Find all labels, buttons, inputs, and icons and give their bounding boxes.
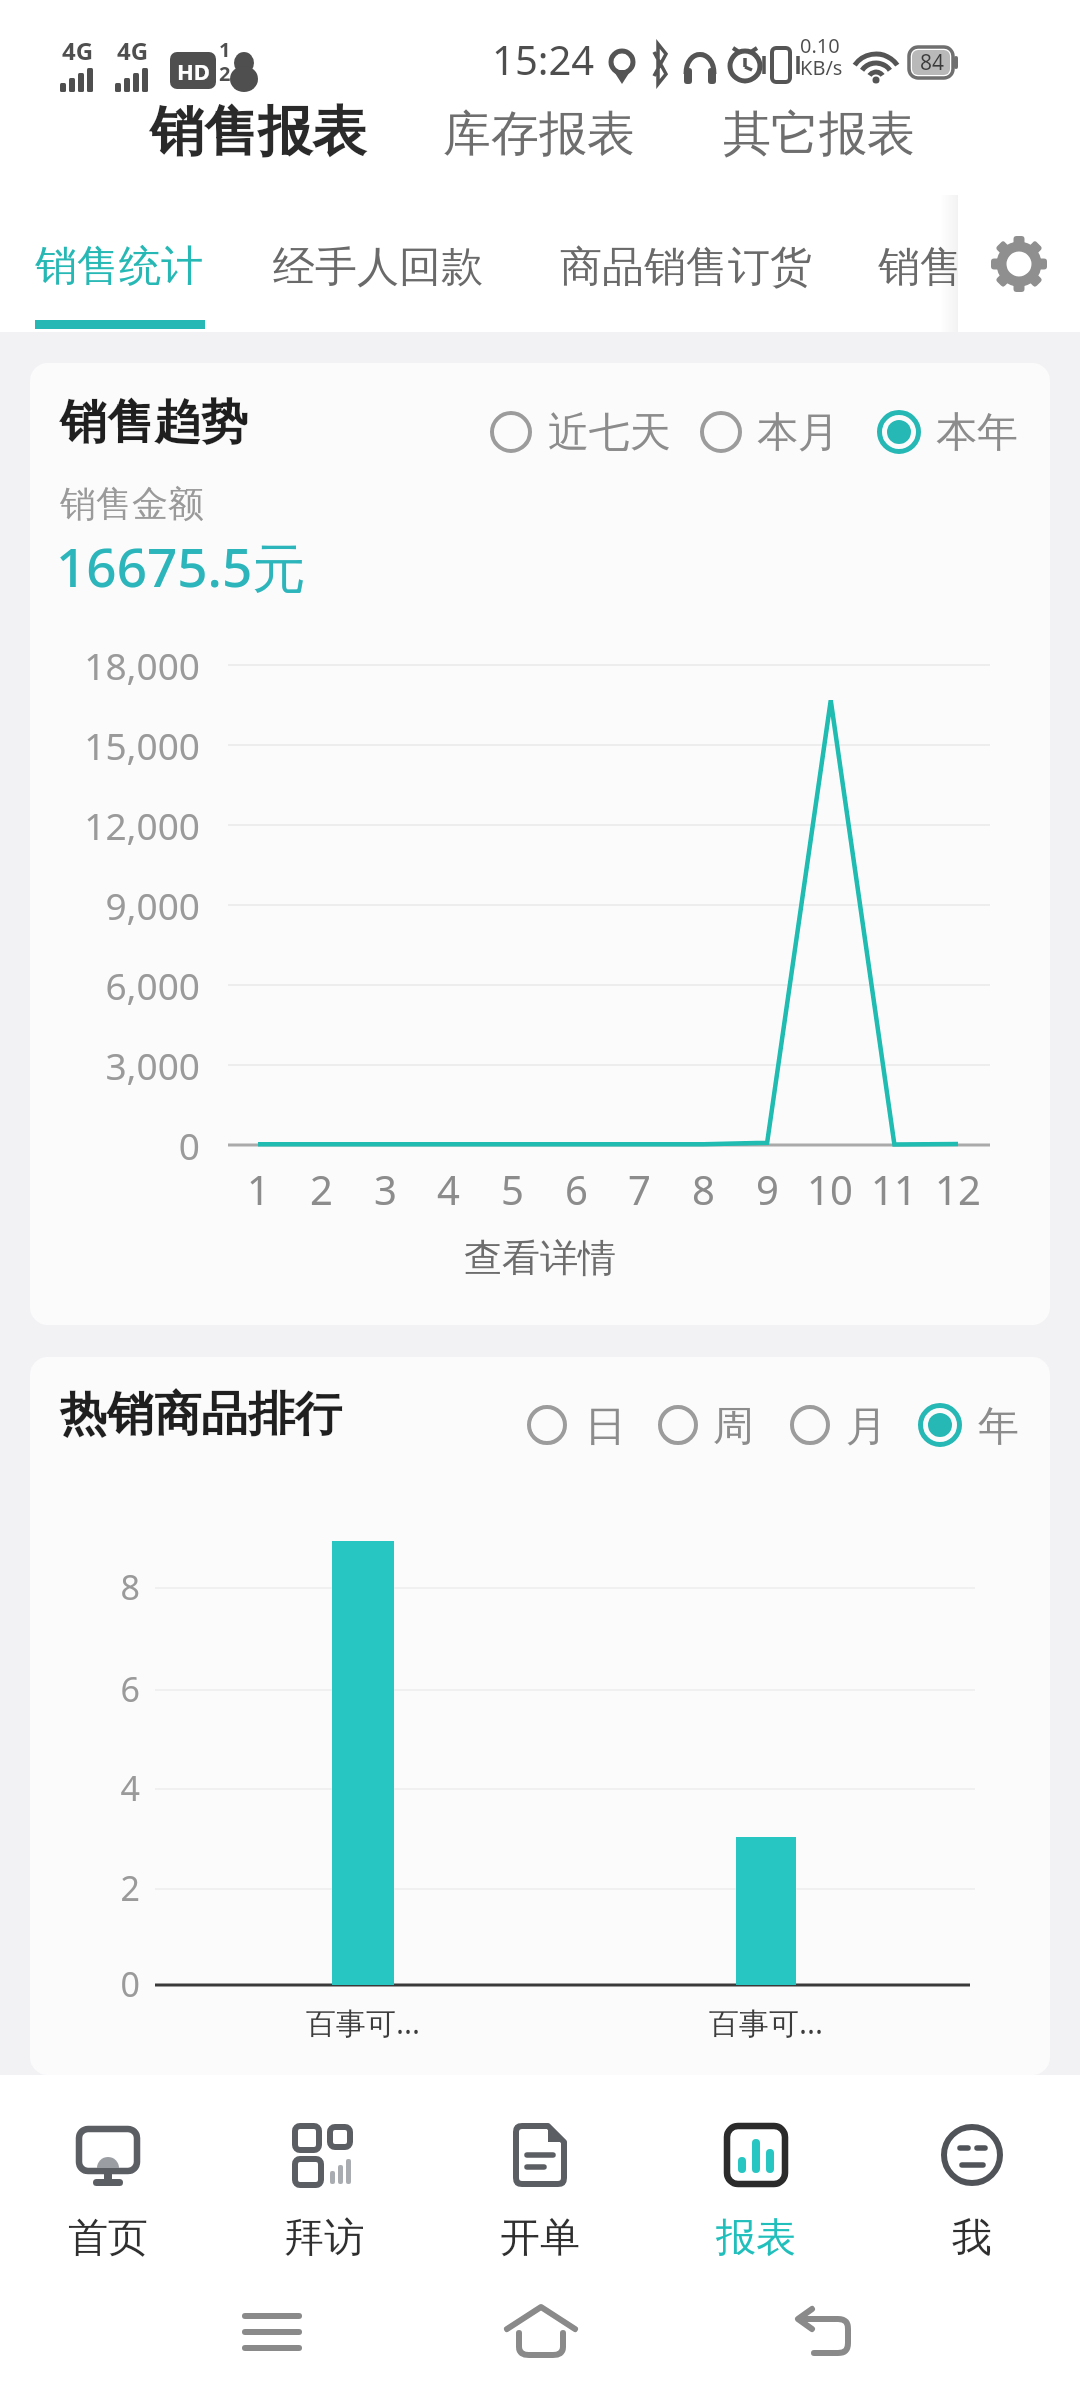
button[interactable]: 商品销售订货 [560, 241, 812, 294]
staticText: 5 [501, 1162, 524, 1216]
staticText: 16675.5元 [56, 530, 306, 602]
staticText: 其它报表 [723, 104, 915, 164]
staticText: 查看详情 [464, 1234, 616, 1282]
staticText: 0 [120, 1961, 140, 2007]
staticText: 9 [756, 1162, 779, 1216]
button[interactable] [18, 2095, 198, 2295]
staticText: 12 [935, 1162, 981, 1216]
staticText: 销售单统计 [878, 241, 958, 294]
staticText: 百事可... [709, 2002, 824, 2043]
staticText: 百事可... [306, 2002, 421, 2043]
staticText: 开单 [500, 2212, 580, 2262]
button[interactable]: 销售统计 [35, 240, 203, 293]
staticText: 拜访 [284, 2212, 364, 2262]
staticText: 15:24 [492, 32, 595, 86]
staticText: 6 [565, 1162, 588, 1216]
staticText: 首页 [68, 2212, 148, 2262]
button[interactable] [653, 1395, 753, 1455]
button[interactable]: 其它报表 [723, 104, 915, 164]
staticText: 销售趋势 [60, 393, 248, 452]
staticText: 4G [117, 34, 149, 67]
staticText: 热销商品排行 [60, 1385, 342, 1444]
button[interactable] [234, 2095, 414, 2295]
staticText: HD [177, 56, 210, 86]
staticText: 18,000 [84, 640, 200, 690]
staticText: 报表 [716, 2212, 796, 2262]
button[interactable]: 经手人回款 [273, 241, 483, 294]
staticText: 4G [62, 34, 94, 67]
button[interactable] [505, 2303, 577, 2359]
staticText: 2 [120, 1865, 140, 1911]
staticText: KB/s [800, 54, 843, 81]
staticText: 7 [628, 1162, 651, 1216]
staticText: 月 [846, 1401, 887, 1453]
staticText: 12,000 [84, 800, 200, 850]
button[interactable] [695, 399, 875, 459]
button[interactable]: 查看详情 [340, 1223, 740, 1293]
staticText: 3 [374, 1162, 397, 1216]
button[interactable] [958, 195, 1080, 332]
staticText: 1 [219, 36, 231, 63]
staticText: 周 [713, 1401, 754, 1453]
staticText: 2 [310, 1162, 333, 1216]
staticText: 销售金额 [60, 481, 204, 526]
staticText: 84 [920, 48, 945, 77]
staticText: 2 [219, 60, 231, 87]
staticText: 商品销售订货 [560, 241, 812, 294]
staticText: 0.10 [800, 32, 840, 59]
button[interactable]: 库存报表 [443, 104, 635, 164]
staticText: 库存报表 [443, 104, 635, 164]
button[interactable]: 销售单统计 [878, 241, 958, 294]
staticText: 6 [120, 1666, 140, 1712]
staticText: 3,000 [105, 1040, 200, 1090]
staticText: 销售报表 [150, 98, 366, 166]
staticText: 日 [585, 1401, 626, 1453]
staticText: 9,000 [105, 880, 200, 930]
button[interactable] [450, 2095, 630, 2295]
button[interactable] [245, 2310, 301, 2356]
staticText: 6,000 [105, 960, 200, 1010]
button[interactable] [485, 399, 705, 459]
staticText: 4 [437, 1162, 460, 1216]
staticText: 8 [120, 1564, 140, 1610]
button[interactable] [882, 2095, 1062, 2295]
button[interactable] [872, 399, 1032, 459]
staticText: 1 [247, 1162, 270, 1216]
staticText: 8 [692, 1162, 715, 1216]
button[interactable] [666, 2095, 846, 2295]
staticText: 近七天 [548, 407, 671, 459]
button[interactable] [913, 1395, 1023, 1455]
button[interactable] [785, 1395, 885, 1455]
staticText: 本年 [936, 407, 1018, 459]
staticText: 我 [952, 2212, 992, 2262]
staticText: 4 [120, 1765, 140, 1811]
staticText: 10 [807, 1162, 853, 1216]
staticText: 15,000 [84, 720, 200, 770]
staticText: 经手人回款 [273, 241, 483, 294]
staticText: 11 [871, 1162, 917, 1216]
staticText: 0 [178, 1120, 200, 1170]
staticText: 本月 [757, 407, 839, 459]
staticText: 销售统计 [35, 240, 203, 293]
button[interactable] [790, 2307, 854, 2359]
staticText: 年 [978, 1401, 1019, 1453]
button[interactable] [522, 1395, 622, 1455]
